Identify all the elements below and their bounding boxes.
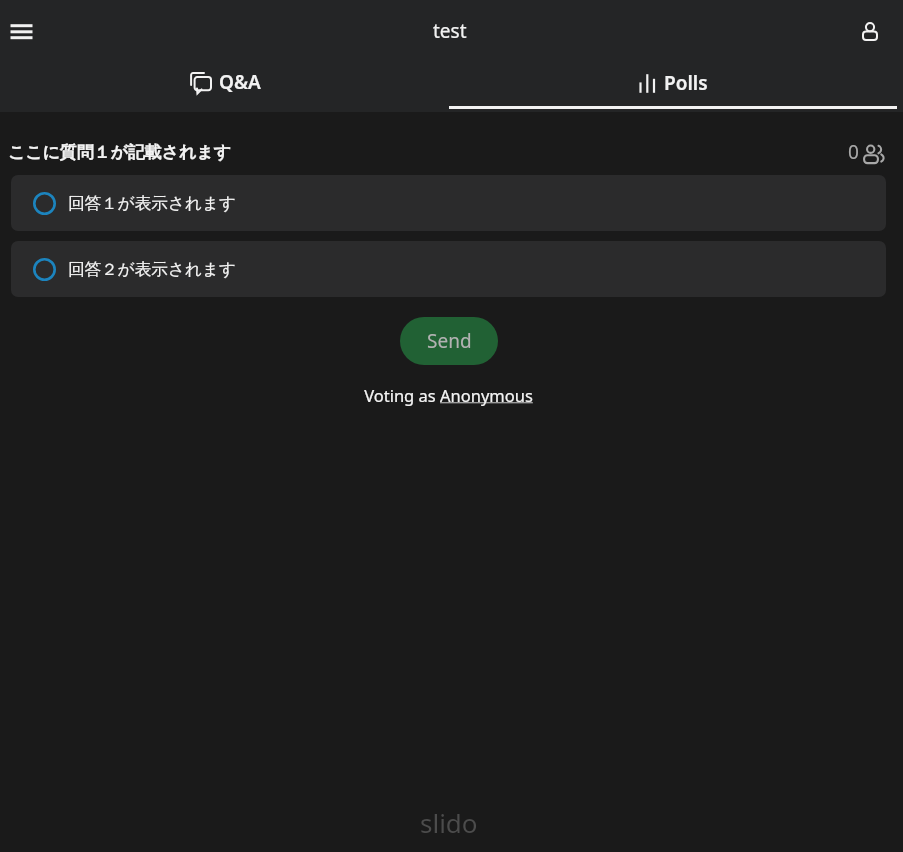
button[interactable]: Send [400, 317, 498, 365]
staticText: Q&A [219, 69, 261, 95]
staticText: ここに質問１が記載されます [8, 142, 231, 163]
button[interactable]: Menu [0, 0, 43, 43]
staticText: test [433, 18, 467, 44]
button[interactable]: Account [855, 14, 885, 48]
staticText: Send [427, 328, 472, 354]
staticText: 回答２が表示されます [68, 259, 236, 280]
button[interactable]: Voting as Anonymous [364, 384, 533, 406]
button[interactable]: 回答１が表示されます [11, 175, 886, 231]
staticText: 回答１が表示されます [68, 193, 236, 214]
button[interactable]: Q&A [0, 62, 451, 112]
staticText: Polls [664, 70, 708, 96]
button[interactable]: Polls [451, 62, 903, 112]
staticText: slido [420, 805, 478, 840]
button[interactable]: 回答２が表示されます [11, 241, 886, 297]
staticText: 0 [848, 139, 859, 160]
